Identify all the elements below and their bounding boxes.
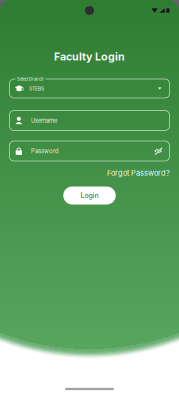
staticText: Forgot Password?	[107, 168, 170, 177]
button[interactable]: Username	[9, 110, 169, 130]
button[interactable]: STEBS	[9, 79, 169, 98]
staticText: Faculty Login	[54, 50, 125, 63]
button[interactable]: Forgot Password?	[107, 169, 170, 177]
staticText: Login	[80, 191, 98, 200]
button[interactable]: Login	[63, 186, 116, 204]
staticText: Password	[31, 147, 59, 155]
staticText: Username	[31, 117, 57, 124]
button[interactable]: Password	[9, 141, 169, 161]
staticText: Select Branch	[17, 76, 44, 82]
staticText: STEBS	[29, 85, 44, 92]
